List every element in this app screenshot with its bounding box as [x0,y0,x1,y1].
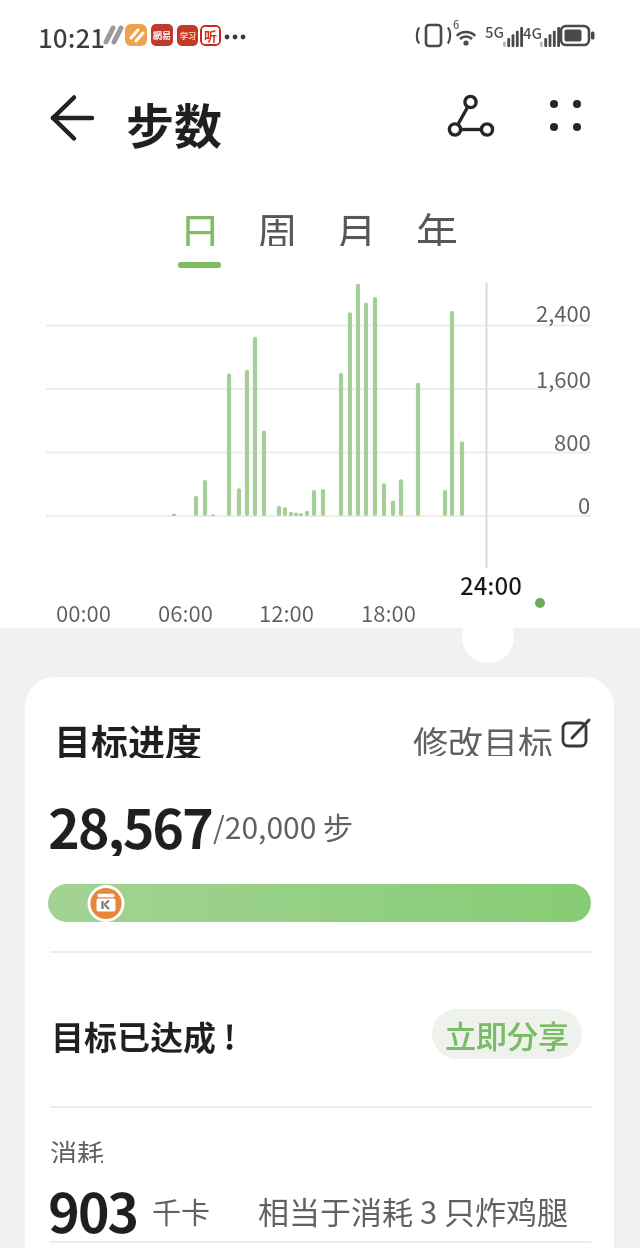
staticText: 目标已达成 ! [51,1012,236,1056]
staticText: 12:00 [259,596,314,624]
button[interactable] [38,98,108,142]
staticText: 周 [256,200,298,246]
button[interactable]: 立即分享 [432,1009,582,1059]
staticText: 日 [179,200,221,246]
staticText: 800 [554,425,591,457]
button[interactable]: 日 [179,200,221,246]
staticText: 步数 [126,88,223,150]
staticText: 18:00 [361,596,416,624]
staticText: 年 [416,200,458,246]
staticText: 6 [453,16,460,32]
staticText: 10:21 [38,18,106,52]
staticText: 2,400 [536,296,591,328]
staticText: 24:00 [460,567,522,595]
staticText: 相当于消耗 3 只炸鸡腿 [258,1188,569,1230]
button[interactable]: 月 [335,200,377,246]
staticText: 0 [578,488,591,520]
staticText: 5G [485,21,505,41]
button[interactable] [440,90,502,150]
staticText: 消耗 [50,1133,104,1163]
staticText: 28,567 [48,786,212,856]
button[interactable]: 周 [256,200,298,246]
staticText: 1,600 [536,362,591,394]
staticText: 听 [204,26,218,45]
staticText: 学习 [180,30,196,42]
staticText: 00:00 [56,596,111,624]
staticText: 立即分享 [445,1012,569,1057]
staticText: /20,000 步 [213,804,354,847]
button[interactable]: 年 [416,200,458,246]
staticText: 千卡 [152,1190,211,1230]
button[interactable] [540,90,592,142]
staticText: 4G [523,22,543,42]
staticText: 06:00 [158,596,213,624]
staticText: 月 [335,200,377,246]
staticText: 目标进度 [54,714,202,758]
staticText: 修改目标 [413,716,554,756]
button[interactable] [380,710,592,758]
staticText: 903 [48,1170,137,1240]
staticText: 網易 [153,29,172,42]
